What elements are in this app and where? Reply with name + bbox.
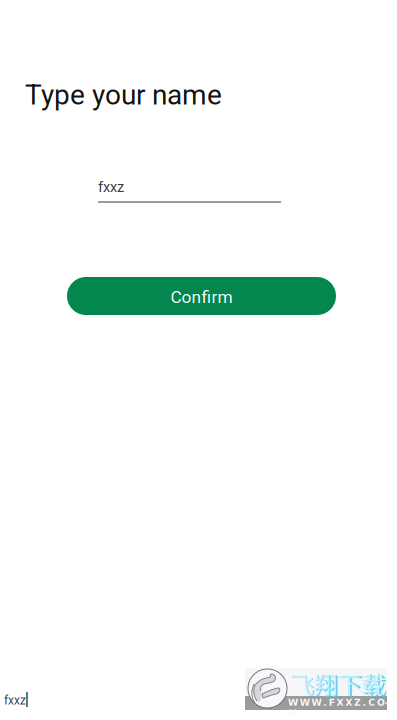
staticText: Confirm — [170, 287, 232, 307]
button[interactable]: Confirm — [67, 277, 336, 315]
staticText: 飞翔下载 — [291, 667, 387, 702]
staticText: Type your name — [25, 79, 222, 111]
staticText: fxxz — [4, 693, 26, 708]
staticText: 飞翔下载 — [291, 667, 383, 700]
staticText: WWW.FXXZ.COM — [288, 697, 396, 708]
button[interactable]: fxxz — [98, 176, 281, 203]
staticText: fxxz — [98, 178, 124, 196]
